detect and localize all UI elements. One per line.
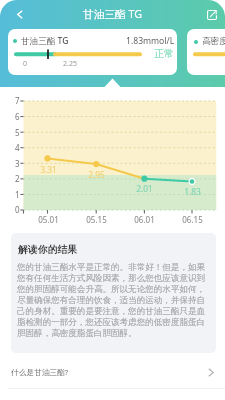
staticText: 高密度 xyxy=(202,36,225,47)
staticText: 0 xyxy=(15,204,20,215)
staticText: 1 xyxy=(15,189,20,200)
staticText: 3.31 xyxy=(40,164,57,175)
staticText: 甘油三酯 TG xyxy=(83,7,143,22)
staticText: 7 xyxy=(15,95,20,106)
staticText: 5 xyxy=(15,127,20,138)
staticText: 6 xyxy=(15,111,20,122)
staticText: 3 xyxy=(15,158,20,169)
staticText: 2.95 xyxy=(88,169,105,180)
staticText: 2.01 xyxy=(136,183,153,194)
button[interactable]: 高密度 xyxy=(187,29,225,75)
staticText: 正常 xyxy=(154,48,174,60)
staticText: 05.01 xyxy=(38,214,59,225)
staticText: 解读你的结果 xyxy=(18,244,77,256)
staticText: 甘油三酯 TG xyxy=(21,35,69,47)
staticText: 1.83mmol/L xyxy=(126,35,175,47)
button[interactable]: 什么是甘油三酯? xyxy=(0,357,225,388)
button[interactable]: 甘油三酯 TG xyxy=(8,29,177,75)
staticText: 05.15 xyxy=(86,214,107,225)
button[interactable]: Back xyxy=(8,1,32,28)
staticText: 1.83 xyxy=(184,186,201,197)
staticText: 06.01 xyxy=(134,214,155,225)
staticText: 0 xyxy=(23,59,28,69)
button[interactable]: Share xyxy=(200,1,224,28)
staticText: 您的甘油三酯水平是正常的。非常好！但是，如果您有任何生活方式风险因素，那么您也应… xyxy=(17,262,209,339)
staticText: 4 xyxy=(15,142,20,153)
staticText: 2.25 xyxy=(63,59,77,69)
staticText: 什么是甘油三酯? xyxy=(11,367,69,378)
staticText: 2 xyxy=(15,173,20,184)
staticText: 06.15 xyxy=(182,214,203,225)
